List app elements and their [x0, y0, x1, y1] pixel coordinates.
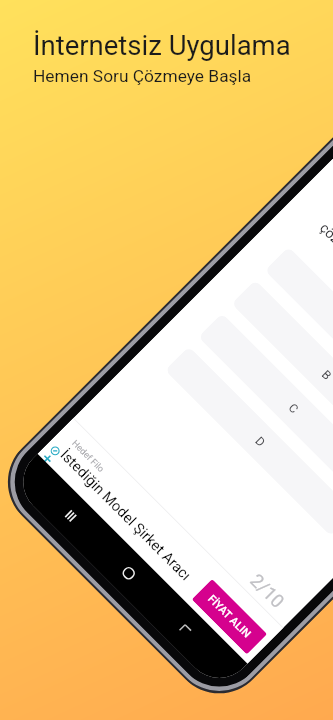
staticText: Hemen Soru Çözmeye Başla: [33, 66, 252, 86]
staticText: Hedef Filo: [69, 438, 106, 475]
other: Close ad: [40, 451, 55, 466]
staticText: İstediğin Model Şirket Aracı: [57, 446, 195, 584]
staticText: FİYAT ALIN: [205, 592, 254, 641]
staticText: C: [286, 401, 301, 416]
staticText: B: [319, 367, 333, 383]
other: Home: [119, 563, 139, 583]
button[interactable]: C: [198, 313, 333, 503]
button[interactable]: A: [264, 246, 333, 437]
button[interactable]: D: [165, 346, 333, 536]
other: Ad information: [49, 444, 61, 457]
button[interactable]: B: [231, 280, 333, 470]
other: Back: [177, 623, 193, 638]
button[interactable]: FİYAT ALIN: [192, 579, 267, 655]
other: Recent apps: [61, 507, 80, 525]
staticText: D: [252, 434, 268, 449]
staticText: İnternetsiz Uygulama: [33, 29, 291, 61]
staticText: 2/10: [245, 570, 288, 613]
staticText: Aşağıdakilerden hangisi sayı doğrusunda …: [317, 193, 333, 350]
